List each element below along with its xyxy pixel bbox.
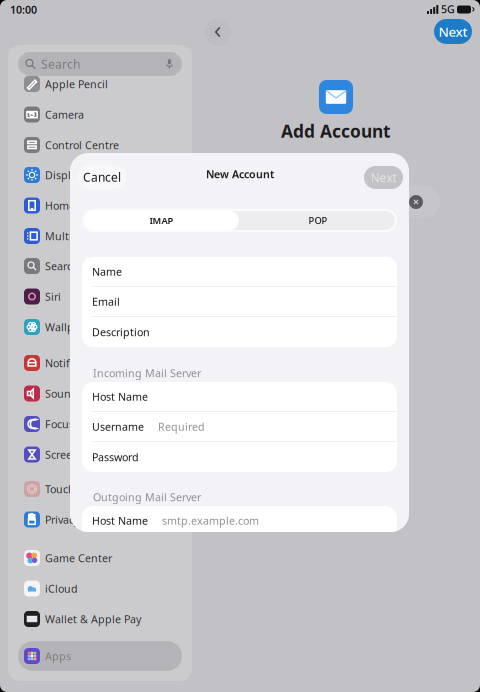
button[interactable]: Wallet & Apple Pay bbox=[16, 604, 184, 634]
staticText: Incoming Mail Server bbox=[93, 366, 201, 380]
button[interactable]: Next bbox=[364, 166, 403, 189]
staticText: Search bbox=[45, 259, 79, 273]
staticText: Apple Pencil bbox=[45, 77, 108, 91]
staticText: Outgoing Mail Server bbox=[93, 490, 201, 504]
staticText: Description bbox=[92, 325, 150, 339]
staticText: POP bbox=[308, 214, 327, 227]
staticText: Name bbox=[92, 265, 122, 279]
button[interactable]: Search bbox=[16, 251, 184, 281]
staticText: Host Name bbox=[92, 514, 148, 528]
staticText: Sounds bbox=[45, 386, 83, 401]
button[interactable]: Game Center bbox=[16, 543, 184, 573]
button[interactable]: Next bbox=[434, 19, 472, 44]
button[interactable]: Screen Time bbox=[16, 439, 184, 469]
staticText: 5G bbox=[441, 2, 455, 16]
staticText: Notifications bbox=[45, 356, 108, 370]
staticText: list. bbox=[384, 214, 409, 234]
staticText: Siri bbox=[45, 289, 61, 304]
staticText: Host Name bbox=[92, 390, 148, 404]
staticText: Add Account bbox=[281, 119, 391, 142]
staticText: Apps bbox=[45, 649, 71, 663]
staticText: Touch ID & Passcode bbox=[45, 482, 150, 496]
staticText: Home Screen & App Library bbox=[45, 198, 179, 213]
button[interactable]: Focus bbox=[16, 409, 184, 439]
button[interactable]: Control Centre bbox=[16, 130, 184, 160]
staticText: smtp.example.com bbox=[162, 514, 259, 528]
staticText: Next bbox=[370, 169, 396, 185]
button[interactable]: Sounds bbox=[16, 378, 184, 408]
staticText: Username bbox=[92, 420, 144, 434]
staticText: iCloud bbox=[45, 581, 78, 596]
staticText: Next bbox=[438, 23, 467, 40]
button[interactable]: Display & Brightness bbox=[16, 160, 184, 190]
staticText: Control Centre bbox=[45, 138, 119, 152]
staticText: Display & Brightness bbox=[45, 168, 151, 182]
button[interactable]: Wallpaper bbox=[16, 312, 184, 342]
button[interactable]: Multitasking & Gestures bbox=[16, 221, 184, 251]
staticText: Wallpaper bbox=[45, 320, 97, 334]
button[interactable]: Camera bbox=[16, 99, 184, 129]
button[interactable]: Apple Pencil bbox=[16, 69, 184, 99]
staticText: Password bbox=[92, 450, 139, 464]
button[interactable]: Touch ID & Passcode bbox=[16, 474, 184, 504]
staticText: New Account bbox=[206, 167, 274, 181]
button[interactable]: Back bbox=[205, 19, 231, 45]
button[interactable]: Siri bbox=[16, 281, 184, 311]
button[interactable]: iCloud bbox=[16, 573, 184, 603]
staticText: Game Center bbox=[45, 551, 112, 565]
staticText: Required bbox=[158, 420, 205, 434]
staticText: Screen Time bbox=[45, 447, 107, 462]
button[interactable]: IMAP bbox=[84, 211, 239, 230]
button[interactable]: Cancel bbox=[78, 165, 126, 189]
staticText: Email bbox=[92, 295, 120, 309]
staticText: Search bbox=[41, 56, 80, 72]
button[interactable]: Privacy & Security bbox=[16, 504, 184, 534]
staticText: Privacy & Security bbox=[45, 512, 133, 527]
button[interactable]: Home Screen & App Library bbox=[16, 190, 184, 220]
staticText: Focus bbox=[45, 417, 74, 431]
staticText: IMAP bbox=[149, 214, 173, 227]
staticText: Wallet & Apple Pay bbox=[45, 612, 141, 626]
button[interactable]: Apps bbox=[18, 641, 182, 671]
staticText: 10:00 bbox=[10, 2, 37, 17]
button[interactable]: POP bbox=[241, 211, 395, 230]
button[interactable]: Notifications bbox=[16, 348, 184, 378]
staticText: Cancel bbox=[83, 169, 121, 185]
button[interactable]: Clear text bbox=[406, 192, 426, 212]
staticText: Multitasking & Gestures bbox=[45, 229, 169, 243]
staticText: Camera bbox=[45, 107, 84, 122]
